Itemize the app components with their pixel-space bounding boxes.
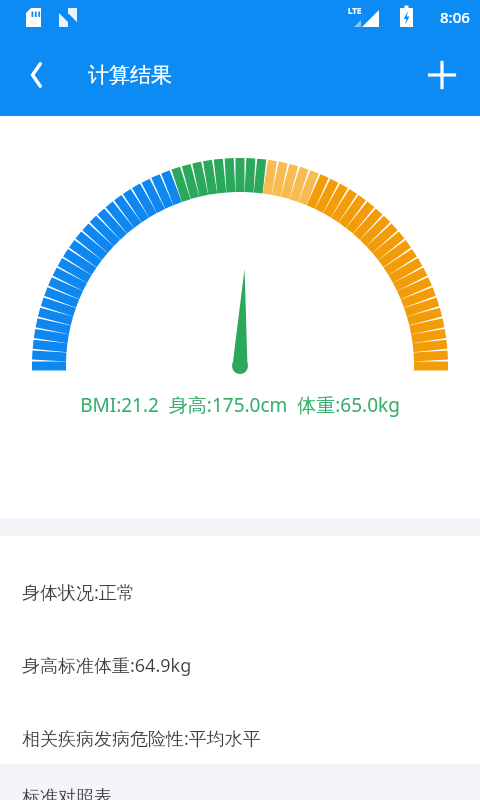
button[interactable]: 身体状况:正常 bbox=[0, 576, 480, 609]
staticText: 计算结果 bbox=[88, 62, 172, 88]
staticText: 标准对照表 bbox=[22, 786, 112, 800]
button[interactable]: Back bbox=[10, 48, 64, 102]
button[interactable]: Add bbox=[414, 47, 470, 103]
button[interactable]: 身高标准体重:64.9kg bbox=[0, 649, 480, 682]
staticText: BMI:21.2 身高:175.0cm 体重:65.0kg bbox=[0, 392, 480, 418]
staticText: 相关疾病发病危险性:平均水平 bbox=[22, 726, 261, 751]
staticText: 身体状况:正常 bbox=[22, 580, 135, 605]
staticText: LTE bbox=[348, 5, 362, 16]
staticText: 8:06 bbox=[440, 7, 470, 27]
button[interactable]: 相关疾病发病危险性:平均水平 bbox=[0, 722, 480, 755]
staticText: 身高标准体重:64.9kg bbox=[22, 653, 192, 678]
